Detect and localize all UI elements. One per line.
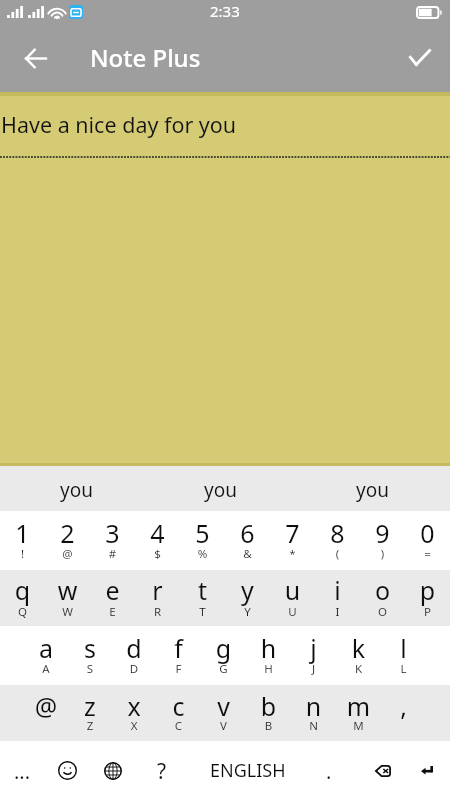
button[interactable]: e xyxy=(90,570,135,626)
staticText: n xyxy=(291,689,336,723)
button[interactable]: n xyxy=(291,685,336,741)
button[interactable]: g xyxy=(201,626,246,685)
staticText: h xyxy=(246,631,291,665)
button[interactable]: x xyxy=(112,685,156,741)
staticText: N xyxy=(291,718,336,734)
button[interactable]: you xyxy=(297,466,448,511)
staticText: ? xyxy=(157,757,167,786)
button[interactable]: z xyxy=(68,685,112,741)
button[interactable]: s xyxy=(68,626,112,685)
staticText: ... xyxy=(14,758,31,785)
staticText: M xyxy=(336,718,381,734)
staticText: 3 xyxy=(90,516,135,550)
staticText: x xyxy=(112,689,156,723)
button[interactable]: Backspace xyxy=(349,741,416,800)
staticText: Z xyxy=(68,718,112,734)
staticText: . xyxy=(326,758,332,785)
staticText: e xyxy=(90,573,135,607)
staticText: X xyxy=(112,718,156,734)
staticText: 6 xyxy=(225,516,270,550)
button[interactable]: q xyxy=(0,570,45,626)
button[interactable]: Language xyxy=(89,741,136,800)
staticText: # xyxy=(90,546,135,562)
staticText: J xyxy=(291,661,336,677)
button[interactable]: 0 xyxy=(405,511,450,570)
button[interactable]: 1 xyxy=(0,511,45,570)
button[interactable]: y xyxy=(225,570,270,626)
button[interactable]: u xyxy=(270,570,315,626)
button[interactable]: 8 xyxy=(315,511,360,570)
button[interactable]: Period xyxy=(309,741,349,800)
button[interactable]: 2 xyxy=(45,511,90,570)
staticText: 5 xyxy=(180,516,225,550)
staticText: I xyxy=(315,604,360,620)
button[interactable]: you xyxy=(1,466,152,511)
button[interactable]: , xyxy=(381,685,426,741)
staticText: $ xyxy=(135,546,180,562)
button[interactable]: b xyxy=(246,685,291,741)
button[interactable]: v xyxy=(201,685,246,741)
staticText: p xyxy=(405,573,450,607)
button[interactable]: r xyxy=(135,570,180,626)
button[interactable]: f xyxy=(156,626,201,685)
button[interactable]: you xyxy=(145,466,296,511)
button[interactable]: w xyxy=(45,570,90,626)
staticText: c xyxy=(156,689,201,723)
staticText: Note Plus xyxy=(90,41,201,74)
button[interactable]: Enter xyxy=(410,741,444,800)
staticText: r xyxy=(135,573,180,607)
staticText: z xyxy=(68,689,112,723)
button[interactable]: 3 xyxy=(90,511,135,570)
button[interactable]: Emoji xyxy=(46,741,89,800)
button[interactable]: Back xyxy=(11,34,59,82)
button[interactable]: m xyxy=(336,685,381,741)
staticText: ENGLISH xyxy=(210,758,286,783)
staticText: t xyxy=(180,573,225,607)
staticText: 9 xyxy=(360,516,405,550)
button[interactable]: c xyxy=(156,685,201,741)
button[interactable]: a xyxy=(24,626,68,685)
staticText: @ xyxy=(24,689,68,723)
staticText: Have a nice day for you xyxy=(1,110,237,139)
button[interactable]: 4 xyxy=(135,511,180,570)
staticText: W xyxy=(45,604,90,620)
staticText: ) xyxy=(360,546,405,562)
staticText: ! xyxy=(0,546,45,562)
button[interactable]: o xyxy=(360,570,405,626)
staticText: T xyxy=(180,604,225,620)
staticText: K xyxy=(336,661,381,677)
staticText: O xyxy=(360,604,405,620)
button[interactable]: 6 xyxy=(225,511,270,570)
staticText: B xyxy=(246,718,291,734)
button[interactable]: Help xyxy=(136,741,186,800)
button[interactable]: l xyxy=(381,626,426,685)
staticText: w xyxy=(45,573,90,607)
staticText: b xyxy=(246,689,291,723)
button[interactable]: 9 xyxy=(360,511,405,570)
staticText: Y xyxy=(225,604,270,620)
button[interactable]: j xyxy=(291,626,336,685)
button[interactable]: 7 xyxy=(270,511,315,570)
button[interactable]: More symbols xyxy=(0,741,45,800)
button[interactable]: 5 xyxy=(180,511,225,570)
staticText: L xyxy=(381,661,426,677)
staticText: i xyxy=(315,573,360,607)
staticText: A xyxy=(24,661,68,677)
button[interactable]: k xyxy=(336,626,381,685)
staticText: D xyxy=(112,661,156,677)
button[interactable]: i xyxy=(315,570,360,626)
button[interactable]: h xyxy=(246,626,291,685)
button[interactable]: ENGLISH xyxy=(186,741,309,800)
staticText: 0 xyxy=(405,516,450,550)
button[interactable]: @ xyxy=(24,685,68,741)
staticText: * xyxy=(270,546,315,562)
button[interactable]: d xyxy=(112,626,156,685)
staticText: H xyxy=(246,661,291,677)
button[interactable]: p xyxy=(405,570,450,626)
staticText: l xyxy=(381,631,426,665)
button[interactable]: t xyxy=(180,570,225,626)
button[interactable]: Save xyxy=(398,35,442,79)
staticText: U xyxy=(270,604,315,620)
staticText: m xyxy=(336,689,381,723)
staticText: Q xyxy=(0,604,45,620)
